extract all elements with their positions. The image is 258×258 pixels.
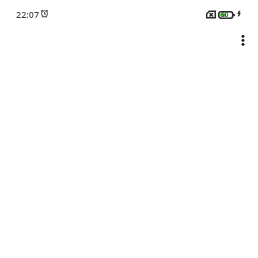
staticText: 50	[221, 10, 229, 19]
button[interactable]: More options	[227, 24, 258, 56]
staticText: 22:07	[16, 8, 40, 20]
